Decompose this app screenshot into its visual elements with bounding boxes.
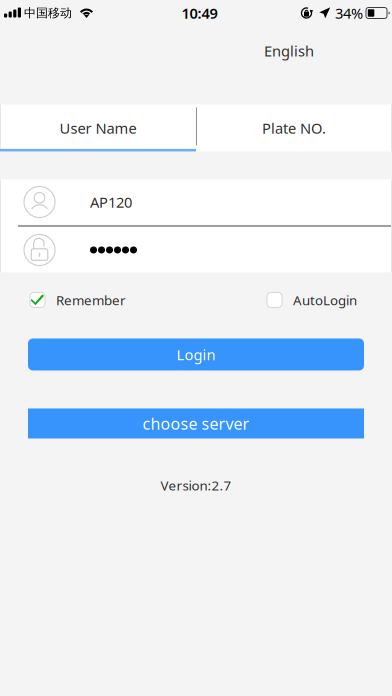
button[interactable]: choose server bbox=[28, 408, 364, 438]
staticText: Remember bbox=[56, 291, 126, 309]
button[interactable]: Remember bbox=[30, 286, 126, 314]
staticText: 中国移动 bbox=[24, 6, 72, 20]
staticText: AutoLogin bbox=[293, 291, 357, 309]
button[interactable]: Plate NO. bbox=[196, 104, 392, 151]
staticText: English bbox=[264, 41, 314, 60]
staticText: Login bbox=[176, 345, 215, 364]
staticText: AP120 bbox=[90, 192, 132, 212]
button[interactable]: Login bbox=[28, 338, 364, 370]
button[interactable]: User Name bbox=[0, 104, 196, 151]
button[interactable]: AutoLogin bbox=[267, 286, 357, 314]
staticText: User Name bbox=[59, 118, 136, 138]
staticText: choose server bbox=[142, 413, 249, 434]
staticText: 10:49 bbox=[181, 3, 217, 23]
staticText: Version:2.7 bbox=[160, 476, 231, 494]
staticText: 34% bbox=[335, 3, 363, 23]
staticText: Plate NO. bbox=[262, 118, 326, 138]
button[interactable]: English bbox=[252, 33, 326, 68]
